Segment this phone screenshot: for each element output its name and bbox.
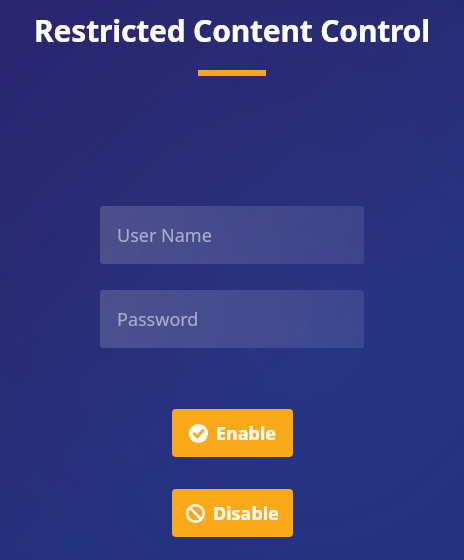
staticText: User Name: [117, 223, 212, 248]
button[interactable]: User Name: [100, 206, 364, 264]
button[interactable]: Disable: [172, 489, 293, 537]
button[interactable]: Password: [100, 290, 364, 348]
staticText: Enable: [216, 421, 277, 446]
staticText: Password: [117, 307, 199, 332]
staticText: Restricted Content Control: [34, 10, 430, 51]
staticText: Disable: [213, 501, 279, 526]
button[interactable]: Enable: [172, 409, 293, 457]
